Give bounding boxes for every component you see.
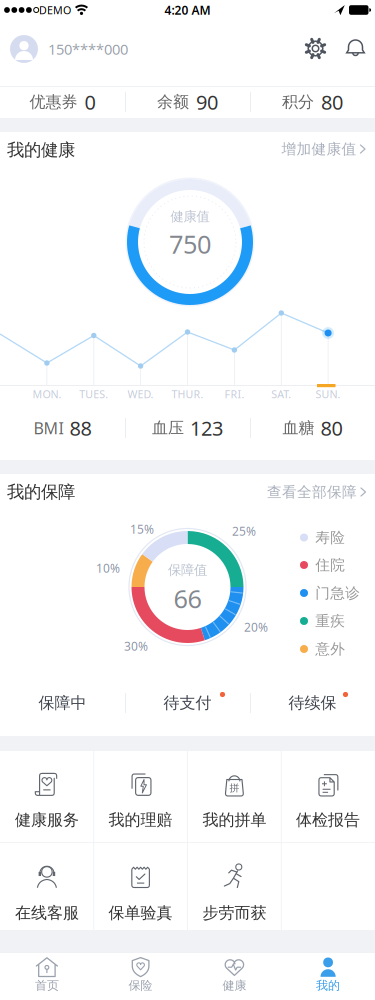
staticText: 保单验真: [109, 903, 173, 923]
staticText: 待续保: [288, 693, 336, 713]
staticText: 健康: [222, 978, 246, 993]
staticText: 查看全部保障: [267, 483, 357, 501]
staticText: 90: [196, 89, 218, 115]
button[interactable]: 我的: [282, 953, 375, 1000]
staticText: 30%: [124, 638, 148, 654]
staticText: 我的理赔: [109, 810, 173, 830]
button[interactable]: 待支付: [125, 688, 249, 718]
button[interactable]: Settings: [300, 33, 330, 63]
staticText: FRI.: [224, 387, 244, 401]
staticText: 增加健康值: [281, 140, 356, 158]
button[interactable]: 积分: [250, 86, 374, 118]
staticText: 15%: [130, 521, 154, 537]
staticText: 150****000: [48, 39, 128, 59]
staticText: WED.: [128, 387, 154, 401]
staticText: 体检报告: [296, 810, 360, 830]
staticText: 待支付: [163, 693, 211, 713]
staticText: 10%: [96, 560, 120, 576]
staticText: 25%: [232, 523, 256, 539]
staticText: DEMO: [39, 3, 71, 17]
staticText: 保障值: [168, 562, 207, 578]
button[interactable]: 余额: [125, 86, 249, 118]
staticText: 优惠券: [29, 92, 77, 112]
staticText: TUES.: [79, 387, 108, 401]
button[interactable]: 步劳而获: [188, 841, 280, 930]
staticText: SAT.: [271, 387, 291, 401]
button[interactable]: 保单验真: [95, 841, 187, 930]
staticText: 我的健康: [7, 139, 75, 161]
button[interactable]: 150****000: [10, 27, 200, 71]
staticText: 积分: [282, 92, 314, 112]
staticText: 住院: [315, 556, 345, 574]
staticText: 88: [69, 415, 91, 441]
button[interactable]: 增加健康值: [281, 140, 366, 158]
staticText: 健康值: [170, 208, 209, 225]
staticText: 4:20 AM: [164, 2, 210, 18]
button[interactable]: Notifications: [340, 33, 370, 63]
staticText: 重疾: [315, 612, 345, 630]
button[interactable]: 健康服务: [1, 752, 93, 841]
button[interactable]: 体检报告: [282, 752, 374, 841]
staticText: 健康服务: [15, 810, 79, 830]
staticText: 在线客服: [15, 903, 79, 923]
button[interactable]: 优惠券: [0, 86, 124, 118]
staticText: 80: [320, 415, 342, 441]
staticText: 步劳而获: [202, 903, 266, 923]
staticText: 血糖: [282, 418, 314, 438]
staticText: 寿险: [315, 528, 345, 546]
staticText: 我的: [316, 978, 340, 993]
staticText: 余额: [157, 92, 189, 112]
staticText: 我的拼单: [202, 810, 266, 830]
staticText: 意外: [315, 640, 345, 658]
staticText: MON.: [32, 387, 61, 401]
staticText: 拼: [230, 783, 238, 792]
staticText: 66: [173, 582, 201, 615]
button[interactable]: 拼: [188, 752, 280, 841]
staticText: 保障中: [38, 693, 86, 713]
button[interactable]: 我的理赔: [95, 752, 187, 841]
staticText: 123: [190, 415, 223, 441]
staticText: 我的保障: [7, 481, 75, 503]
staticText: 保险: [129, 978, 153, 993]
button[interactable]: 健康: [188, 953, 281, 1000]
staticText: THUR.: [171, 387, 203, 401]
staticText: 0: [84, 89, 95, 115]
button[interactable]: 首页: [0, 953, 93, 1000]
staticText: BMI: [33, 417, 63, 439]
button[interactable]: 在线客服: [1, 841, 93, 930]
staticText: 80: [321, 89, 343, 115]
button[interactable]: 保障中: [0, 688, 124, 718]
staticText: 750: [169, 227, 211, 261]
button[interactable]: 保险: [94, 953, 187, 1000]
button[interactable]: 待续保: [250, 688, 374, 718]
staticText: 血压: [152, 418, 184, 438]
staticText: 首页: [35, 978, 59, 993]
staticText: 门急诊: [315, 584, 360, 602]
staticText: SUN.: [316, 387, 341, 401]
staticText: 20%: [244, 619, 268, 635]
button[interactable]: 查看全部保障: [267, 483, 367, 501]
